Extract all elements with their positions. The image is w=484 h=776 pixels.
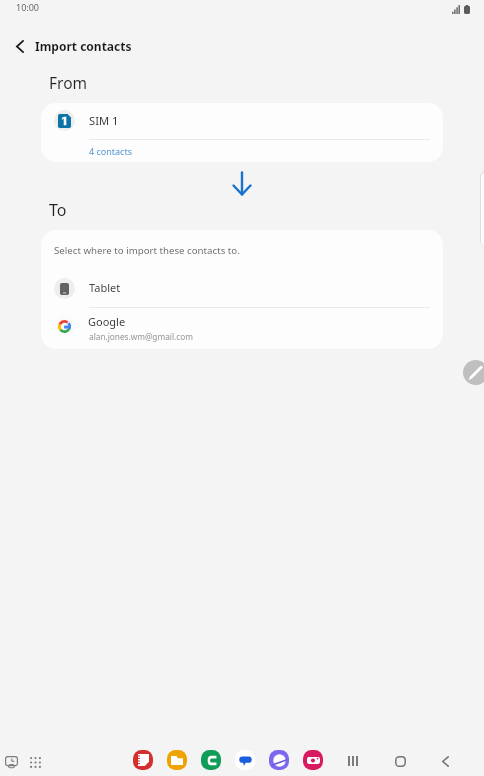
staticText: Import contacts (35, 38, 132, 54)
staticText: Select where to import these contacts to… (54, 244, 240, 257)
staticText: From (49, 72, 88, 93)
button[interactable]: Contacts (201, 750, 221, 770)
button[interactable]: SIM 1, 4 contacts (41, 103, 443, 139)
button[interactable]: Recents (342, 750, 364, 772)
button[interactable]: Messages (235, 750, 255, 770)
button[interactable]: Camera (303, 750, 323, 770)
button[interactable]: Internet (269, 750, 289, 770)
button[interactable]: Notes (133, 750, 153, 770)
button[interactable]: Tablet (41, 270, 443, 307)
staticText: alan.jones.wm@gmail.com (89, 331, 193, 342)
staticText: 10:00 (16, 1, 40, 13)
button[interactable]: Back (434, 750, 456, 772)
staticText: 4 contacts (89, 145, 132, 157)
staticText: SIM 1 (89, 113, 119, 128)
button[interactable]: Edit (463, 360, 484, 385)
staticText: Tablet (89, 280, 121, 295)
button[interactable]: Google, alan.jones.wm@gmail.com (41, 308, 443, 349)
staticText: To (49, 199, 67, 221)
button[interactable]: My Files (167, 750, 187, 770)
button[interactable]: Back (2, 28, 38, 64)
staticText: Google (88, 314, 126, 329)
button[interactable]: Recent apps (0, 751, 22, 773)
button[interactable]: Home (389, 750, 411, 772)
button[interactable]: Apps (24, 751, 46, 773)
